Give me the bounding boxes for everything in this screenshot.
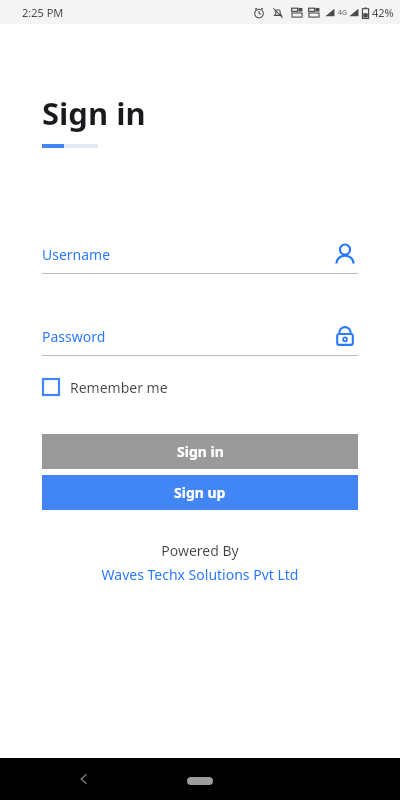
staticText: Password [42,327,332,346]
button[interactable]: Sign up [42,475,358,510]
staticText: 2:25 PM [22,5,64,20]
button[interactable]: Home [187,777,213,785]
staticText: Sign in [177,442,224,461]
staticText: Username [42,245,332,264]
staticText: 42% [372,5,394,20]
button[interactable]: Sign in [42,434,358,469]
button[interactable]: Username [332,241,358,267]
staticText: Sign up [174,483,226,502]
staticText: Remember me [70,378,168,397]
button[interactable]: Back [72,767,96,791]
button[interactable]: Show password [332,323,358,349]
button[interactable]: Waves Techx Solutions Pvt Ltd [0,565,400,584]
staticText: Powered By [0,541,400,560]
staticText: 4G [338,8,348,18]
staticText: Sign in [42,92,146,134]
button[interactable]: Remember me [42,372,168,402]
